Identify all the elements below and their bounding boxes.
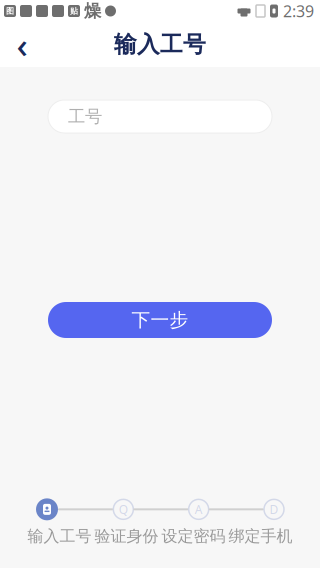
staticText: 设定密码 xyxy=(161,526,225,546)
staticText: A xyxy=(195,501,203,517)
staticText: 燥 xyxy=(84,0,101,22)
staticText: 图 xyxy=(6,6,14,16)
staticText: 验证身份 xyxy=(94,526,158,546)
staticText: ‹ xyxy=(16,21,27,67)
staticText: 下一步 xyxy=(131,308,188,331)
staticText: 贴 xyxy=(70,6,78,16)
staticText: D xyxy=(269,501,278,517)
button[interactable]: 下一步 xyxy=(48,302,272,338)
button[interactable]: 工号 xyxy=(48,100,272,133)
staticText: Q xyxy=(119,501,128,517)
staticText: 输入工号 xyxy=(27,526,91,546)
staticText: 绑定手机 xyxy=(228,526,292,546)
staticText: 工号 xyxy=(68,106,102,127)
button[interactable]: Back xyxy=(0,22,44,66)
staticText: 输入工号 xyxy=(114,31,206,58)
staticText: 2:39 xyxy=(283,0,314,22)
